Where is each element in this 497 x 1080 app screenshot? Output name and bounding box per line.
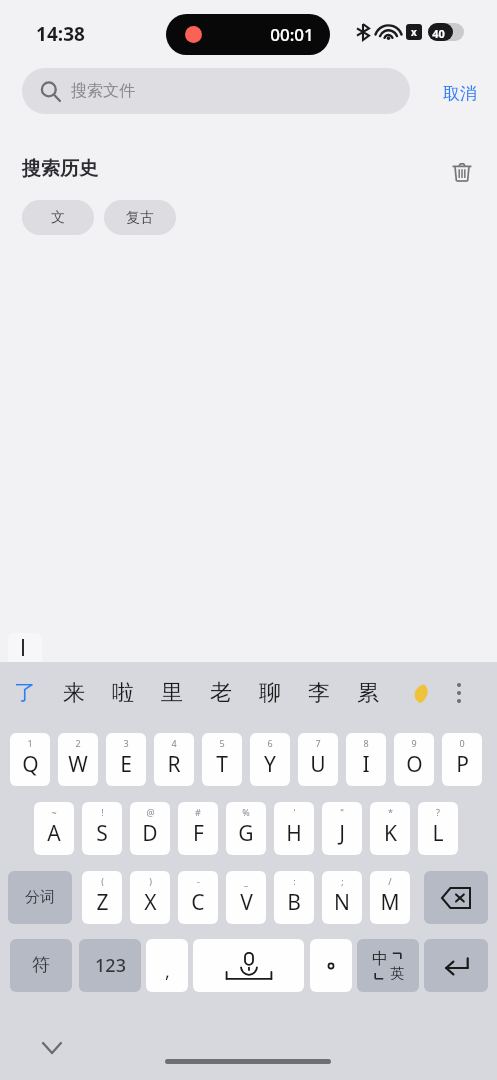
staticText: /	[388, 875, 392, 887]
staticText: 啦	[112, 679, 134, 707]
button[interactable]: Enter	[424, 939, 488, 992]
button[interactable]: #	[178, 802, 218, 855]
button[interactable]: '	[274, 802, 314, 855]
button[interactable]: Emoji	[400, 662, 438, 724]
button[interactable]: ~	[34, 802, 74, 855]
button[interactable]: :	[274, 871, 314, 924]
staticText: 李	[308, 679, 330, 707]
staticText: C	[191, 888, 205, 917]
staticText: 6	[267, 737, 273, 749]
staticText: Z	[96, 888, 109, 917]
staticText: ~	[51, 806, 57, 818]
button[interactable]: 符	[10, 939, 72, 992]
staticText: 00:01	[270, 23, 314, 46]
button[interactable]: (	[82, 871, 122, 924]
button[interactable]: Switch Chinese English	[357, 939, 419, 992]
staticText: G	[238, 819, 254, 848]
staticText: B	[287, 888, 301, 917]
button[interactable]: 7	[298, 733, 338, 786]
button[interactable]: 文	[22, 200, 94, 235]
button[interactable]: 1	[10, 733, 50, 786]
button[interactable]: 老	[199, 662, 243, 724]
button[interactable]: 了	[3, 662, 47, 724]
button[interactable]: @	[130, 802, 170, 855]
button[interactable]: 0	[442, 733, 482, 786]
button[interactable]: Backspace	[424, 871, 488, 924]
staticText: 5	[219, 737, 225, 749]
button[interactable]: 8	[346, 733, 386, 786]
staticText: W	[68, 750, 88, 779]
staticText: V	[240, 888, 253, 917]
button[interactable]: )	[130, 871, 170, 924]
staticText: U	[310, 750, 326, 779]
staticText: #	[195, 806, 201, 818]
button[interactable]: 里	[150, 662, 194, 724]
button[interactable]: 3	[106, 733, 146, 786]
staticText: "	[340, 806, 344, 818]
staticText: 123	[95, 953, 126, 978]
staticText: x	[411, 25, 417, 39]
staticText: 英	[390, 965, 404, 983]
button[interactable]: 9	[394, 733, 434, 786]
staticText: 4	[171, 737, 177, 749]
button[interactable]: "	[322, 802, 362, 855]
staticText: S	[96, 819, 108, 848]
staticText: -	[197, 875, 200, 887]
button[interactable]: ,	[146, 939, 188, 992]
button[interactable]: ?	[418, 802, 458, 855]
staticText: J	[339, 819, 345, 848]
button[interactable]: /	[370, 871, 410, 924]
staticText: N	[334, 888, 350, 917]
button[interactable]: 取消	[435, 73, 485, 114]
button[interactable]: Hide keyboard	[34, 1030, 70, 1066]
button[interactable]: ;	[322, 871, 362, 924]
staticText: 1	[27, 737, 33, 749]
staticText: 7	[315, 737, 321, 749]
button[interactable]	[310, 939, 352, 992]
staticText: A	[47, 819, 61, 848]
button[interactable]: 123	[79, 939, 141, 992]
button[interactable]: %	[226, 802, 266, 855]
button[interactable]: Clear history	[444, 154, 480, 190]
staticText: E	[120, 750, 132, 779]
staticText: _	[244, 875, 248, 887]
button[interactable]: 复古	[104, 200, 176, 235]
button[interactable]: 啦	[101, 662, 145, 724]
staticText: 0	[459, 737, 465, 749]
staticText: 40	[432, 26, 445, 41]
staticText: F	[193, 819, 204, 848]
button[interactable]: More options	[440, 662, 478, 724]
button[interactable]: *	[370, 802, 410, 855]
staticText: 来	[63, 679, 85, 707]
button[interactable]: 来	[52, 662, 96, 724]
staticText: 搜索文件	[71, 81, 135, 101]
staticText: :	[293, 875, 296, 887]
staticText: H	[286, 819, 302, 848]
staticText: ,	[165, 959, 170, 984]
staticText: @	[146, 806, 155, 818]
button[interactable]: 6	[250, 733, 290, 786]
staticText: *	[388, 806, 393, 818]
staticText: 取消	[443, 83, 477, 104]
staticText: K	[384, 819, 397, 848]
button[interactable]: 搜索文件	[22, 68, 410, 114]
staticText: ;	[341, 875, 344, 887]
button[interactable]: 4	[154, 733, 194, 786]
staticText: 分词	[25, 888, 55, 907]
staticText: 累	[357, 679, 379, 707]
button[interactable]: _	[226, 871, 266, 924]
staticText: 14:38	[36, 21, 85, 47]
button[interactable]: Space, voice input	[193, 939, 304, 992]
staticText: O	[406, 750, 423, 779]
staticText: 搜索历史	[22, 157, 98, 181]
button[interactable]: -	[178, 871, 218, 924]
button[interactable]: !	[82, 802, 122, 855]
staticText: Q	[22, 750, 39, 779]
button[interactable]: 李	[297, 662, 341, 724]
button[interactable]: 分词	[8, 871, 72, 924]
staticText: 3	[123, 737, 129, 749]
button[interactable]: 累	[346, 662, 390, 724]
button[interactable]: 5	[202, 733, 242, 786]
button[interactable]: 2	[58, 733, 98, 786]
button[interactable]: 聊	[248, 662, 292, 724]
